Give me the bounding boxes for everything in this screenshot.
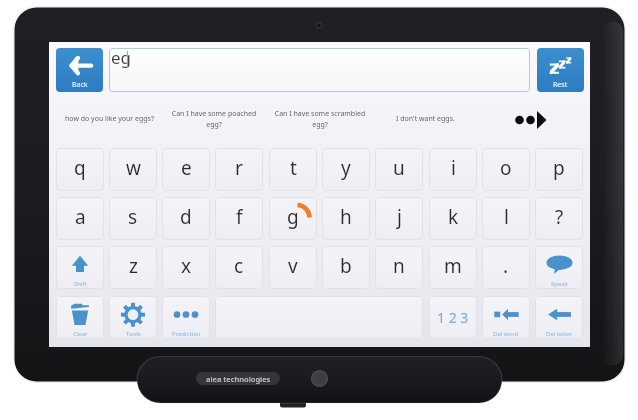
button[interactable]: Tools (109, 296, 157, 339)
button[interactable]: . (482, 246, 530, 289)
staticText: r (235, 155, 243, 181)
button[interactable]: Clear (56, 296, 104, 339)
button[interactable]: e (162, 148, 210, 191)
staticText: b (340, 253, 352, 279)
button[interactable]: i (429, 148, 477, 191)
button[interactable]: Space (215, 296, 423, 339)
button[interactable]: t (269, 148, 317, 191)
button[interactable]: y (322, 148, 370, 191)
staticText: x (181, 253, 192, 279)
button[interactable]: n (375, 246, 423, 289)
button[interactable]: z (109, 246, 157, 289)
staticText: f (236, 204, 243, 230)
button[interactable]: how do you like your eggs? (56, 97, 162, 141)
button[interactable]: Shift (56, 246, 104, 289)
staticText: alea technologies (206, 374, 271, 384)
button[interactable]: a (56, 197, 104, 240)
staticText: Rest (553, 80, 568, 90)
staticText: Speak (551, 280, 568, 288)
button[interactable]: q (56, 148, 104, 191)
staticText: q (74, 155, 86, 181)
button[interactable]: More predictions (478, 98, 584, 142)
button[interactable]: Can I have some scrambled egg? (267, 97, 373, 141)
button[interactable]: g (269, 197, 317, 240)
button[interactable]: Delete letter (535, 296, 583, 339)
staticText: v (288, 253, 298, 279)
staticText: i (451, 155, 456, 181)
staticText: c (234, 253, 244, 279)
button[interactable]: eg (109, 48, 530, 92)
staticText: t (290, 155, 297, 181)
button[interactable]: I don't want eggs. (372, 97, 478, 141)
staticText: Can I have some poached egg? (168, 109, 260, 129)
button[interactable]: s (109, 197, 157, 240)
staticText: Clear (73, 330, 88, 338)
staticText: Can I have some scrambled egg? (274, 109, 366, 129)
staticText: Tools (126, 330, 141, 338)
staticText: 1 2 3 (437, 308, 469, 327)
button[interactable]: u (375, 148, 423, 191)
staticText: g (287, 204, 299, 230)
button[interactable]: c (215, 246, 263, 289)
staticText: Back (72, 80, 88, 90)
button[interactable]: l (482, 197, 530, 240)
button[interactable]: d (162, 197, 210, 240)
staticText: n (393, 253, 405, 279)
staticText: d (180, 204, 192, 230)
staticText: I don't want eggs. (396, 114, 455, 124)
staticText: o (500, 155, 512, 181)
staticText: a (75, 204, 86, 230)
staticText: how do you like your eggs? (65, 114, 154, 124)
button[interactable]: Speak (535, 246, 583, 289)
staticText: z (129, 253, 138, 279)
button[interactable]: ? (535, 197, 583, 240)
staticText: j (397, 204, 402, 230)
button[interactable]: m (429, 246, 477, 289)
staticText: Prediction (172, 330, 201, 338)
button[interactable]: f (215, 197, 263, 240)
staticText: k (448, 204, 459, 230)
staticText: w (126, 155, 141, 181)
button[interactable]: k (429, 197, 477, 240)
button[interactable]: p (535, 148, 583, 191)
button[interactable]: h (322, 197, 370, 240)
button[interactable]: r (215, 148, 263, 191)
button[interactable]: j (375, 197, 423, 240)
button[interactable]: x (162, 246, 210, 289)
staticText: p (553, 155, 565, 181)
button[interactable]: Prediction (162, 296, 210, 339)
staticText: y (341, 155, 351, 181)
staticText: h (340, 204, 352, 230)
staticText: l (504, 204, 509, 230)
button[interactable]: 1 2 3 (429, 296, 477, 339)
button[interactable]: w (109, 148, 157, 191)
staticText: s (128, 204, 138, 230)
button[interactable]: b (322, 246, 370, 289)
button[interactable]: Can I have some poached egg? (161, 97, 267, 141)
staticText: e (181, 155, 192, 181)
button[interactable]: Rest (537, 48, 584, 92)
button[interactable]: o (482, 148, 530, 191)
button[interactable]: Back (56, 48, 103, 92)
staticText: ? (555, 204, 564, 230)
staticText: u (393, 155, 405, 181)
staticText: Del letter (546, 330, 572, 338)
staticText: m (444, 253, 462, 279)
staticText: eg (111, 48, 132, 69)
staticText: Del word (493, 330, 519, 338)
button[interactable]: v (269, 246, 317, 289)
staticText: Shift (74, 280, 87, 288)
staticText: . (503, 253, 509, 279)
button[interactable]: Delete word (482, 296, 530, 339)
